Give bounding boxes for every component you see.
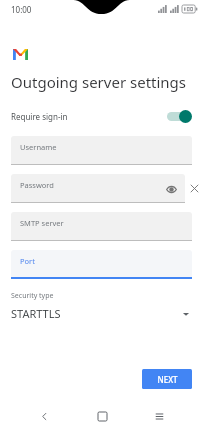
staticText: NEXT	[157, 374, 178, 385]
staticText: SMTP server	[20, 218, 64, 228]
button[interactable]: Require sign-in	[0, 105, 203, 127]
button[interactable]: SMTP server	[11, 212, 192, 241]
staticText: Password	[20, 180, 54, 190]
staticText: Require sign-in	[11, 111, 68, 122]
staticText: Port	[20, 256, 35, 266]
staticText: 10:00	[11, 4, 32, 15]
staticText: STARTTLS	[11, 306, 61, 321]
button[interactable]: Show password	[163, 181, 179, 197]
button[interactable]: Home	[89, 403, 115, 429]
staticText: Outgoing server settings	[11, 72, 187, 92]
button[interactable]: Password	[11, 174, 185, 203]
button[interactable]: Clear	[185, 174, 203, 203]
staticText: Security type	[11, 291, 54, 301]
button[interactable]: Port	[11, 250, 192, 279]
button[interactable]: Security type	[0, 291, 203, 321]
other: Expand security type	[180, 308, 192, 320]
button[interactable]: Recent apps	[146, 403, 172, 429]
button[interactable]: Require sign-in toggle	[166, 108, 192, 124]
button[interactable]: Back	[31, 403, 57, 429]
button[interactable]: Username	[11, 136, 192, 165]
staticText: Username	[20, 142, 57, 152]
button[interactable]: NEXT	[142, 369, 192, 389]
